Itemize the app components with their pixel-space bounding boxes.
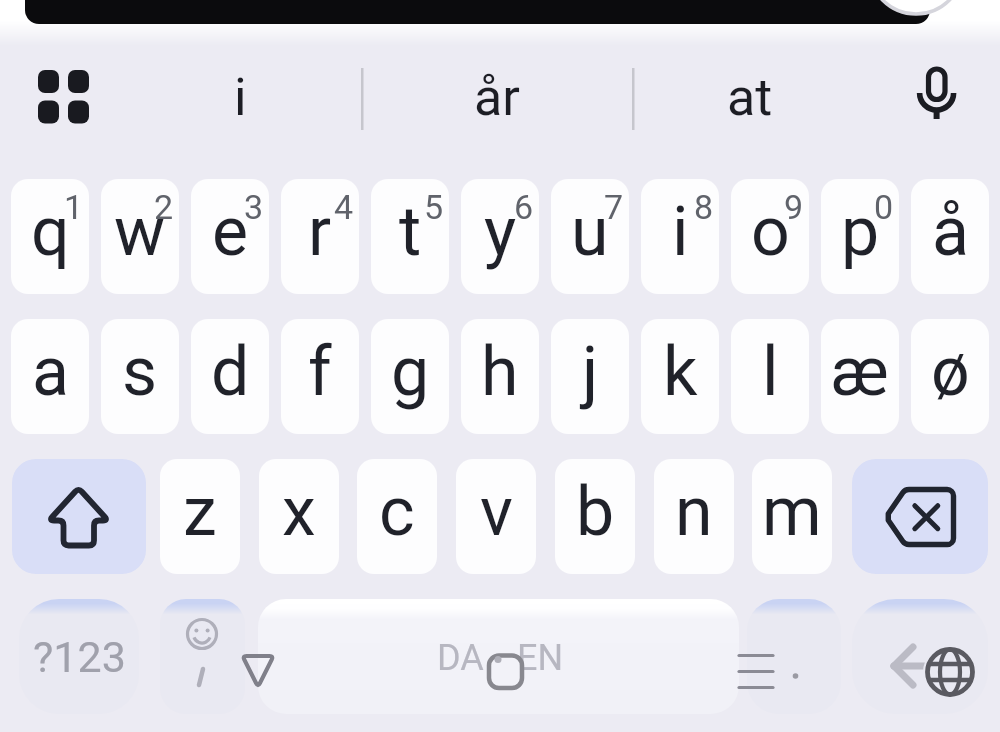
staticText: m xyxy=(762,472,822,552)
staticText: o xyxy=(751,192,790,272)
staticText: EN xyxy=(517,637,564,679)
button[interactable]: q xyxy=(11,179,89,294)
button[interactable]: æ xyxy=(821,319,899,434)
staticText: 2 xyxy=(154,187,174,223)
staticText: w xyxy=(114,192,166,272)
staticText: å xyxy=(932,192,969,272)
button[interactable]: o xyxy=(731,179,809,294)
staticText: at xyxy=(727,67,773,128)
staticText: r xyxy=(308,192,332,272)
button[interactable]: i xyxy=(641,179,719,294)
button[interactable]: d xyxy=(191,319,269,434)
staticText: 4 xyxy=(334,187,354,223)
button[interactable]: k xyxy=(641,319,719,434)
staticText: 0 xyxy=(874,187,894,223)
button[interactable] xyxy=(28,60,100,132)
button[interactable]: j xyxy=(551,319,629,434)
staticText: l xyxy=(762,332,779,412)
staticText: d xyxy=(211,332,250,412)
button[interactable] xyxy=(258,599,739,714)
button[interactable] xyxy=(12,459,146,574)
staticText: x xyxy=(282,472,316,552)
staticText: 3 xyxy=(244,187,264,223)
button[interactable]: t xyxy=(371,179,449,294)
staticText: 8 xyxy=(694,187,714,223)
staticText: k xyxy=(663,332,698,412)
button[interactable]: u xyxy=(551,179,629,294)
button[interactable] xyxy=(852,599,988,714)
staticText: t xyxy=(399,192,422,272)
button[interactable]: v xyxy=(456,459,536,574)
staticText: i xyxy=(234,67,247,128)
button[interactable]: at xyxy=(660,55,840,145)
staticText: j xyxy=(582,332,599,412)
staticText: 5 xyxy=(424,187,444,223)
button[interactable] xyxy=(906,58,966,132)
button[interactable] xyxy=(852,459,988,574)
staticText: a xyxy=(32,332,69,412)
staticText: ø xyxy=(931,332,970,412)
button[interactable]: p xyxy=(821,179,899,294)
staticText: p xyxy=(841,192,880,272)
staticText: f xyxy=(308,332,332,412)
staticText: z xyxy=(183,472,217,552)
staticText: s xyxy=(122,332,158,412)
staticText: y xyxy=(484,192,517,272)
staticText: e xyxy=(212,192,249,272)
staticText: i xyxy=(672,192,689,272)
button[interactable]: x xyxy=(259,459,339,574)
button[interactable]: s xyxy=(101,319,179,434)
button[interactable]: år xyxy=(407,55,587,145)
button[interactable]: b xyxy=(555,459,635,574)
staticText: 9 xyxy=(784,187,804,223)
staticText: q xyxy=(31,192,70,272)
button[interactable]: h xyxy=(461,319,539,434)
staticText: u xyxy=(571,192,609,272)
button[interactable]: l xyxy=(731,319,809,434)
button[interactable]: m xyxy=(752,459,832,574)
button[interactable]: g xyxy=(371,319,449,434)
button[interactable]: e xyxy=(191,179,269,294)
button[interactable] xyxy=(747,599,841,714)
staticText: 1 xyxy=(64,187,84,223)
button[interactable]: r xyxy=(281,179,359,294)
button[interactable]: w xyxy=(101,179,179,294)
staticText: DA xyxy=(437,637,484,679)
button[interactable]: i xyxy=(150,55,330,145)
button[interactable]: f xyxy=(281,319,359,434)
button[interactable]: y xyxy=(461,179,539,294)
staticText: æ xyxy=(831,332,889,412)
staticText: h xyxy=(481,332,519,412)
staticText: ?123 xyxy=(33,632,126,682)
button[interactable]: ?123 xyxy=(19,599,139,714)
staticText: b xyxy=(576,472,615,552)
button[interactable]: c xyxy=(357,459,437,574)
staticText: n xyxy=(675,472,713,552)
staticText: 7 xyxy=(604,187,624,223)
button[interactable] xyxy=(160,599,245,714)
staticText: v xyxy=(480,472,513,552)
button[interactable]: n xyxy=(654,459,734,574)
button[interactable]: a xyxy=(11,319,89,434)
staticText: år xyxy=(474,67,520,128)
staticText: 6 xyxy=(514,187,534,223)
button[interactable]: å xyxy=(911,179,989,294)
button[interactable]: ø xyxy=(911,319,989,434)
staticText: c xyxy=(379,472,415,552)
button[interactable]: z xyxy=(160,459,240,574)
staticText: g xyxy=(391,332,430,412)
